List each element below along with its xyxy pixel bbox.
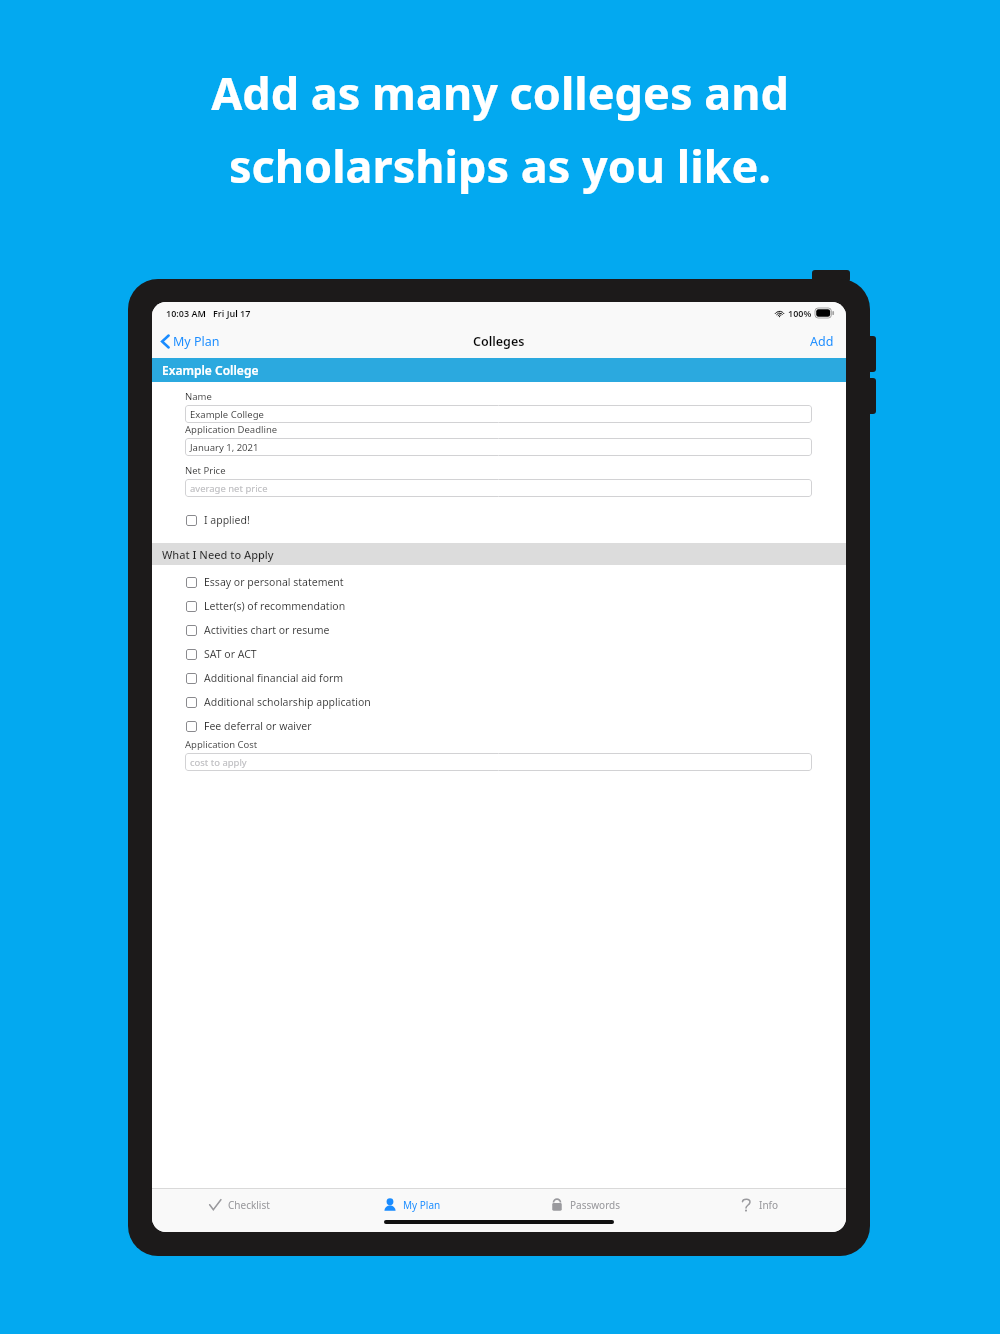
staticText: Name: [185, 390, 212, 403]
staticText: Fri Jul 17: [213, 307, 251, 319]
button[interactable]: My Plan: [152, 329, 228, 354]
staticText: Example College: [190, 408, 264, 421]
staticText: January 1, 2021: [190, 441, 259, 454]
button[interactable]: I applied!: [152, 508, 846, 532]
staticText: I applied!: [204, 513, 250, 527]
staticText: scholarships as you like.: [229, 135, 771, 196]
button[interactable]: Additional financial aid form: [152, 666, 846, 690]
staticText: Essay or personal statement: [204, 575, 344, 589]
staticText: cost to apply: [190, 756, 247, 769]
button[interactable]: Checklist: [152, 1189, 325, 1220]
staticText: average net price: [190, 482, 268, 495]
staticText: My Plan: [403, 1198, 441, 1212]
button[interactable]: My Plan: [325, 1189, 498, 1220]
staticText: What I Need to Apply: [162, 547, 274, 562]
staticText: SAT or ACT: [204, 647, 257, 661]
staticText: Activities chart or resume: [204, 623, 330, 637]
staticText: My Plan: [173, 333, 220, 350]
staticText: Colleges: [473, 333, 525, 350]
staticText: Application Cost: [185, 738, 258, 751]
staticText: Passwords: [570, 1198, 621, 1212]
staticText: Fee deferral or waiver: [204, 719, 312, 733]
staticText: Letter(s) of recommendation: [204, 599, 346, 613]
button[interactable]: Passwords: [498, 1189, 672, 1220]
staticText: 100%: [788, 307, 812, 319]
staticText: Info: [759, 1198, 779, 1212]
button[interactable]: average net price: [185, 479, 812, 497]
staticText: Add as many colleges and: [211, 62, 789, 123]
staticText: Additional scholarship application: [204, 695, 371, 709]
staticText: 10:03 AM: [166, 307, 206, 319]
staticText: Example College: [162, 362, 259, 378]
staticText: Additional financial aid form: [204, 671, 344, 685]
button[interactable]: cost to apply: [185, 753, 812, 771]
staticText: Net Price: [185, 464, 226, 477]
button[interactable]: Info: [672, 1189, 846, 1220]
button[interactable]: Additional scholarship application: [152, 690, 846, 714]
button[interactable]: Activities chart or resume: [152, 618, 846, 642]
staticText: Checklist: [228, 1198, 270, 1212]
button[interactable]: Example College: [185, 405, 812, 423]
staticText: Application Deadline: [185, 423, 278, 436]
button[interactable]: Fee deferral or waiver: [152, 714, 846, 738]
button[interactable]: Add: [798, 328, 846, 355]
button[interactable]: Essay or personal statement: [152, 570, 846, 594]
button[interactable]: SAT or ACT: [152, 642, 846, 666]
staticText: Add: [810, 333, 834, 350]
button[interactable]: Letter(s) of recommendation: [152, 594, 846, 618]
button[interactable]: January 1, 2021: [185, 438, 812, 456]
